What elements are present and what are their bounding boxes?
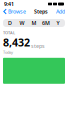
staticText: Browse [8, 8, 26, 15]
staticText: Y [56, 19, 59, 27]
staticText: D [8, 19, 12, 27]
button[interactable]: D [4, 20, 16, 26]
staticText: steps [31, 42, 45, 49]
staticText: 6M [42, 19, 50, 27]
staticText: Today [3, 49, 13, 55]
staticText: Add [56, 8, 65, 15]
staticText: M [31, 19, 36, 27]
staticText: TOTAL [3, 30, 15, 35]
button[interactable]: Add [56, 8, 65, 15]
button[interactable]: M [28, 20, 40, 26]
staticText: 9:41 [4, 0, 14, 8]
button[interactable]: Browse [3, 8, 26, 15]
staticText: W [19, 19, 24, 27]
button[interactable]: Y [52, 20, 64, 26]
button[interactable]: 6M [40, 20, 52, 26]
staticText: Steps [34, 8, 48, 15]
staticText: 8,432 [3, 35, 30, 49]
button[interactable]: W [16, 20, 28, 26]
